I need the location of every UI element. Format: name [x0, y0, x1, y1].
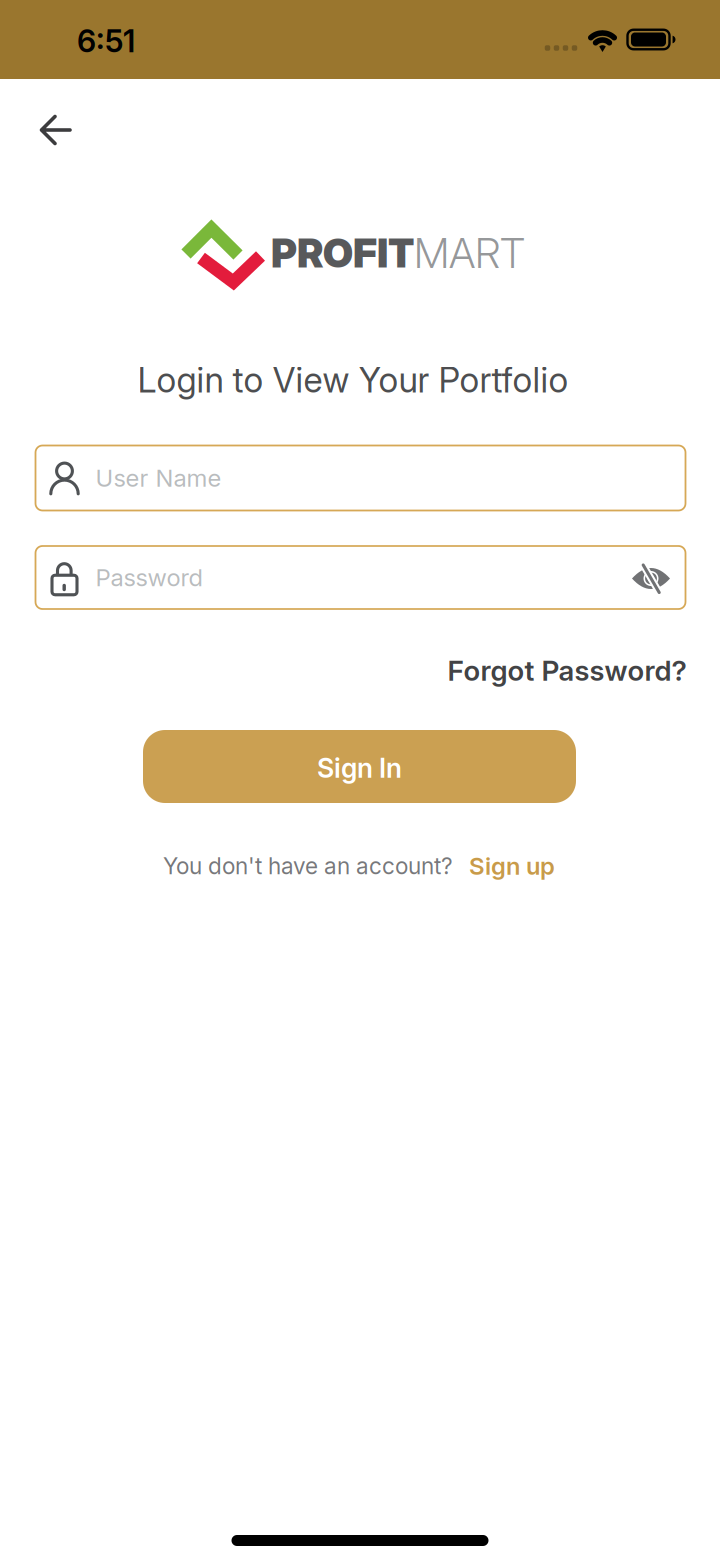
staticText: PROFIT: [271, 229, 414, 277]
staticText: Password: [95, 563, 202, 592]
staticText: Sign In: [317, 752, 402, 784]
staticText: You don't have an account?: [163, 852, 453, 880]
staticText: User Name: [95, 463, 221, 492]
staticText: Forgot Password?: [447, 654, 686, 687]
staticText: Sign up: [469, 851, 555, 880]
staticText: MART: [414, 228, 525, 278]
staticText: Login to View Your Portfolio: [137, 359, 568, 401]
staticText: 6:51: [77, 22, 135, 59]
